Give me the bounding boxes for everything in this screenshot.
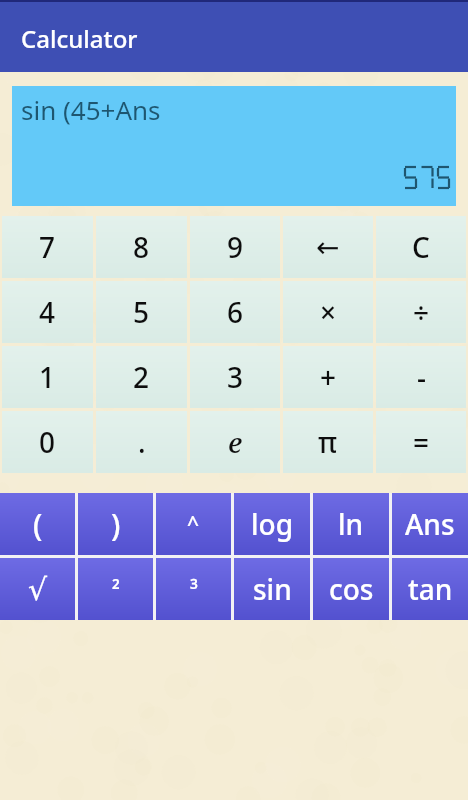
staticText: sin <box>253 570 292 608</box>
button[interactable]: tan <box>392 558 468 620</box>
button[interactable]: ← <box>283 216 373 278</box>
staticText: ln <box>338 505 364 543</box>
staticText: . <box>138 423 146 461</box>
button[interactable]: - <box>376 346 466 408</box>
staticText: Ans <box>405 505 455 543</box>
staticText: ³ <box>190 574 198 604</box>
staticText: tan <box>408 570 453 608</box>
staticText: - <box>417 358 426 396</box>
staticText: 2 <box>133 358 150 396</box>
button[interactable]: ^ <box>156 493 231 555</box>
button[interactable]: 3 <box>190 346 280 408</box>
staticText: 4 <box>39 293 56 331</box>
button[interactable]: 0 <box>2 411 93 473</box>
button[interactable]: ³ <box>156 558 231 620</box>
button[interactable]: ) <box>78 493 153 555</box>
button[interactable]: 8 <box>96 216 187 278</box>
button[interactable]: . <box>96 411 187 473</box>
button[interactable]: e <box>190 411 280 473</box>
staticText: 5 <box>133 293 150 331</box>
button[interactable]: ² <box>78 558 153 620</box>
staticText: ^ <box>187 510 200 539</box>
button[interactable]: cos <box>313 558 389 620</box>
staticText: 9 <box>227 228 244 266</box>
button[interactable]: × <box>283 281 373 343</box>
button[interactable]: sin <box>234 558 310 620</box>
staticText: Calculator <box>21 22 138 55</box>
staticText: sin (45+Ans <box>21 92 161 127</box>
staticText: ( <box>33 504 43 545</box>
staticText: = <box>413 423 430 461</box>
button[interactable]: ÷ <box>376 281 466 343</box>
staticText: 1 <box>39 358 56 396</box>
button[interactable]: 6 <box>190 281 280 343</box>
staticText: cos <box>329 570 374 608</box>
button[interactable]: π <box>283 411 373 473</box>
button[interactable]: Ans <box>392 493 468 555</box>
staticText: 6 <box>227 293 244 331</box>
staticText: + <box>320 358 337 396</box>
button[interactable]: = <box>376 411 466 473</box>
button[interactable]: 9 <box>190 216 280 278</box>
button[interactable]: + <box>283 346 373 408</box>
staticText: ) <box>111 504 121 545</box>
staticText: e <box>228 423 243 461</box>
button[interactable]: log <box>234 493 310 555</box>
button[interactable]: 4 <box>2 281 93 343</box>
staticText: π <box>318 423 338 461</box>
staticText: 7 <box>39 228 56 266</box>
button[interactable]: 5 <box>96 281 187 343</box>
staticText: ² <box>112 574 120 604</box>
staticText: ÷ <box>413 293 430 331</box>
staticText: C <box>412 228 430 266</box>
staticText: ← <box>316 231 340 264</box>
staticText: √ <box>28 572 48 607</box>
button[interactable]: ln <box>313 493 389 555</box>
staticText: log <box>251 505 294 543</box>
button[interactable]: 2 <box>96 346 187 408</box>
staticText: × <box>320 293 337 331</box>
button[interactable]: √ <box>0 558 75 620</box>
button[interactable]: 1 <box>2 346 93 408</box>
button[interactable]: ( <box>0 493 75 555</box>
button[interactable]: 7 <box>2 216 93 278</box>
staticText: 3 <box>227 358 244 396</box>
staticText: 0 <box>39 423 56 461</box>
staticText: 8 <box>133 228 150 266</box>
button[interactable]: C <box>376 216 466 278</box>
